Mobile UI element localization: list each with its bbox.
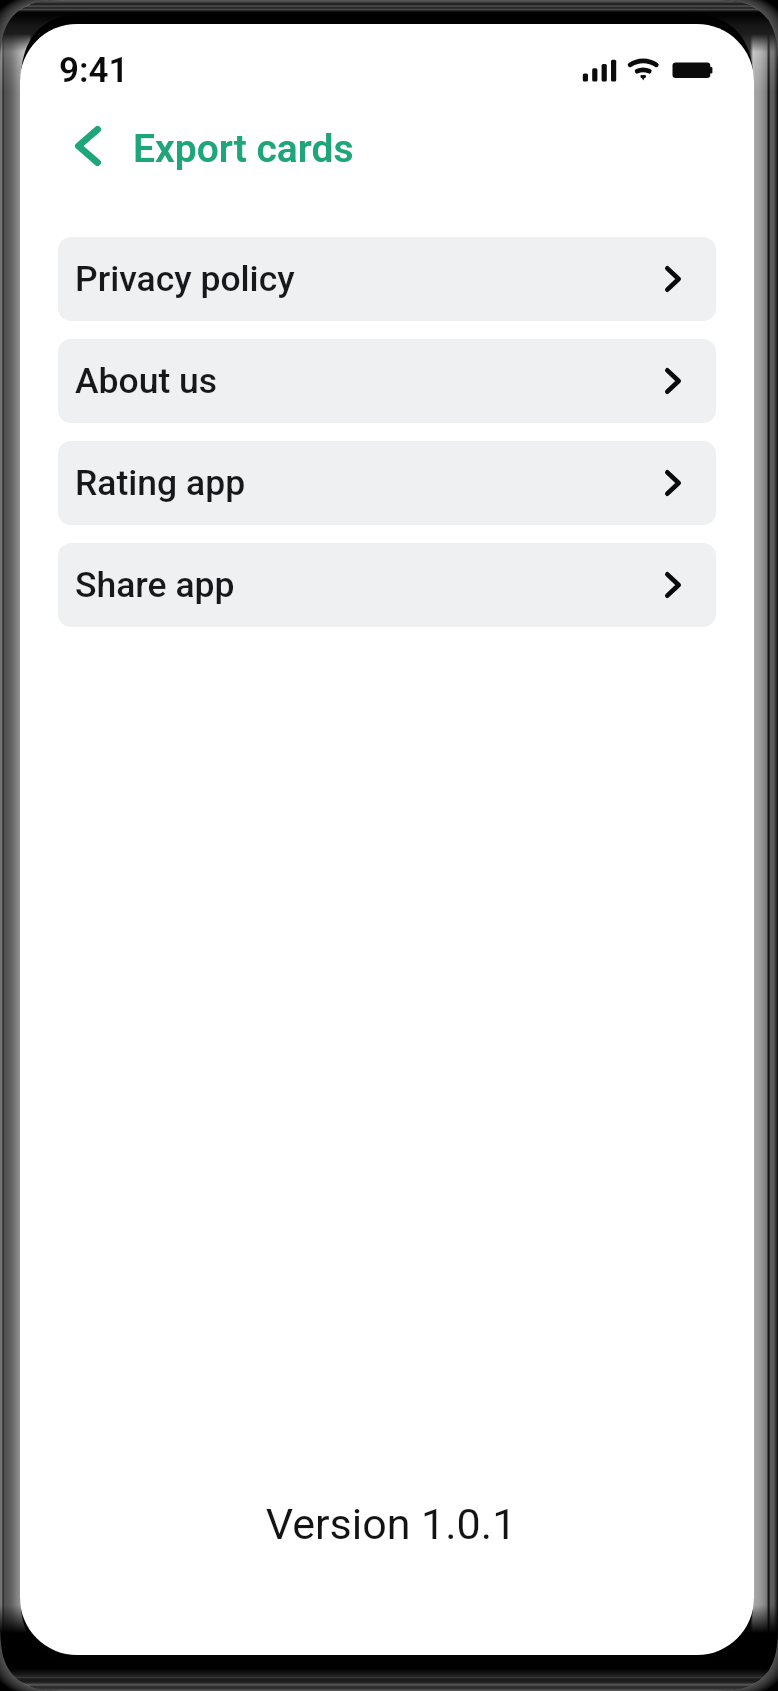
staticText: Export cards xyxy=(133,126,354,172)
button[interactable]: Privacy policy xyxy=(58,237,716,321)
button[interactable]: Rating app xyxy=(58,441,716,525)
staticText: About us xyxy=(75,360,218,402)
staticText: 9:41 xyxy=(59,50,129,91)
button[interactable]: Share app xyxy=(58,543,716,627)
button[interactable]: Back xyxy=(58,108,118,184)
button[interactable]: About us xyxy=(58,339,716,423)
staticText: Rating app xyxy=(75,462,246,504)
staticText: Share app xyxy=(75,564,235,606)
other: Signal, Wi-Fi and battery status xyxy=(580,57,736,83)
staticText: Version 1.0.1 xyxy=(24,1499,754,1549)
staticText: Privacy policy xyxy=(75,258,295,300)
